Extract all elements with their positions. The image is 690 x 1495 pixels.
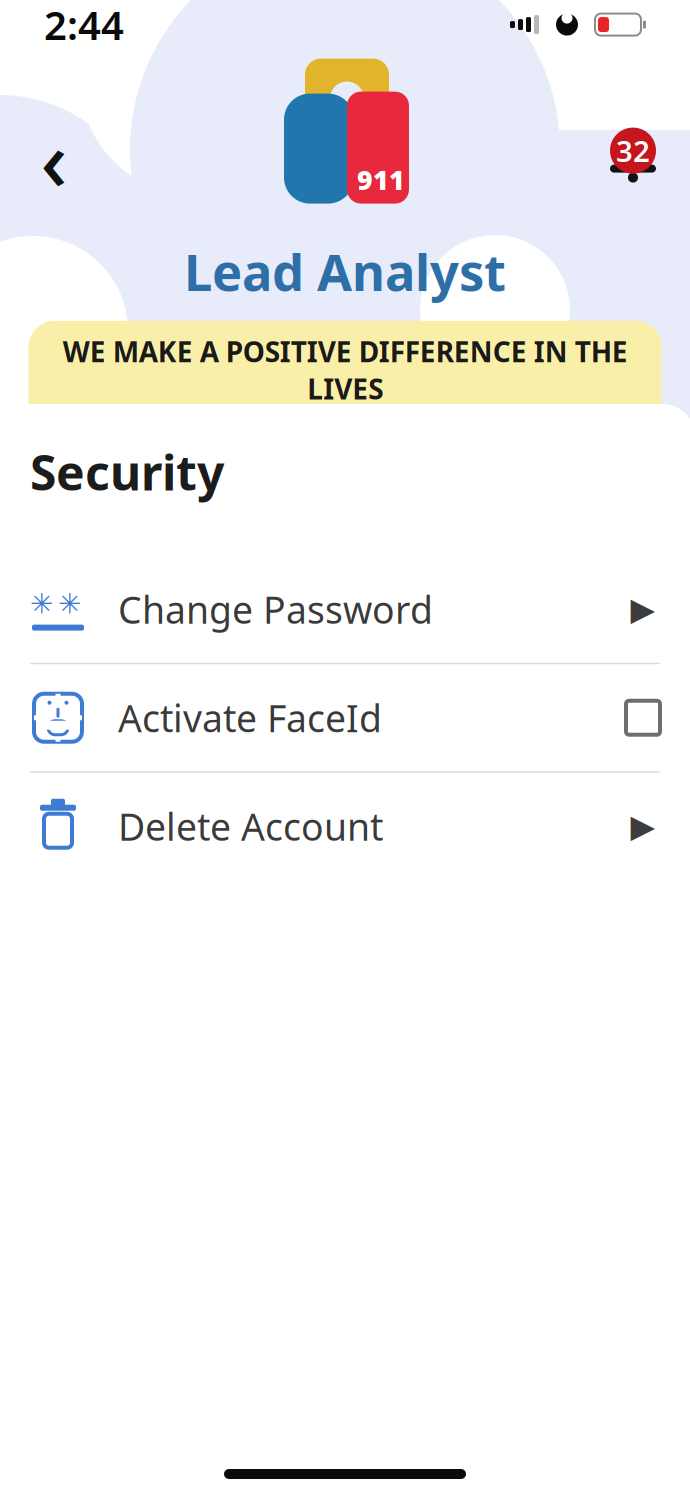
staticText: Activate FaceId (118, 693, 382, 743)
staticText: ▶ (630, 591, 655, 627)
staticText: ✳ (30, 588, 53, 620)
staticText: 32 (616, 131, 650, 170)
button[interactable]: Change Password (0, 556, 690, 663)
button[interactable]: Notifications, 32 unread (600, 124, 666, 194)
staticText: 2:44 (44, 0, 124, 51)
staticText: Delete Account (118, 801, 383, 851)
button[interactable]: Activate FaceId (0, 664, 690, 771)
staticText: ▶ (630, 808, 655, 844)
staticText: Security (30, 440, 224, 504)
staticText: Change Password (118, 584, 433, 634)
button[interactable]: Delete Account (0, 773, 690, 880)
staticText: ‹ (40, 104, 67, 213)
staticText: Lead Analyst (184, 238, 506, 305)
staticText: WE MAKE A POSITIVE DIFFERENCE IN THE LIV… (62, 333, 627, 444)
staticText: ✳ (58, 588, 81, 620)
button[interactable]: Back (24, 129, 84, 189)
staticText: 911 (357, 162, 405, 197)
